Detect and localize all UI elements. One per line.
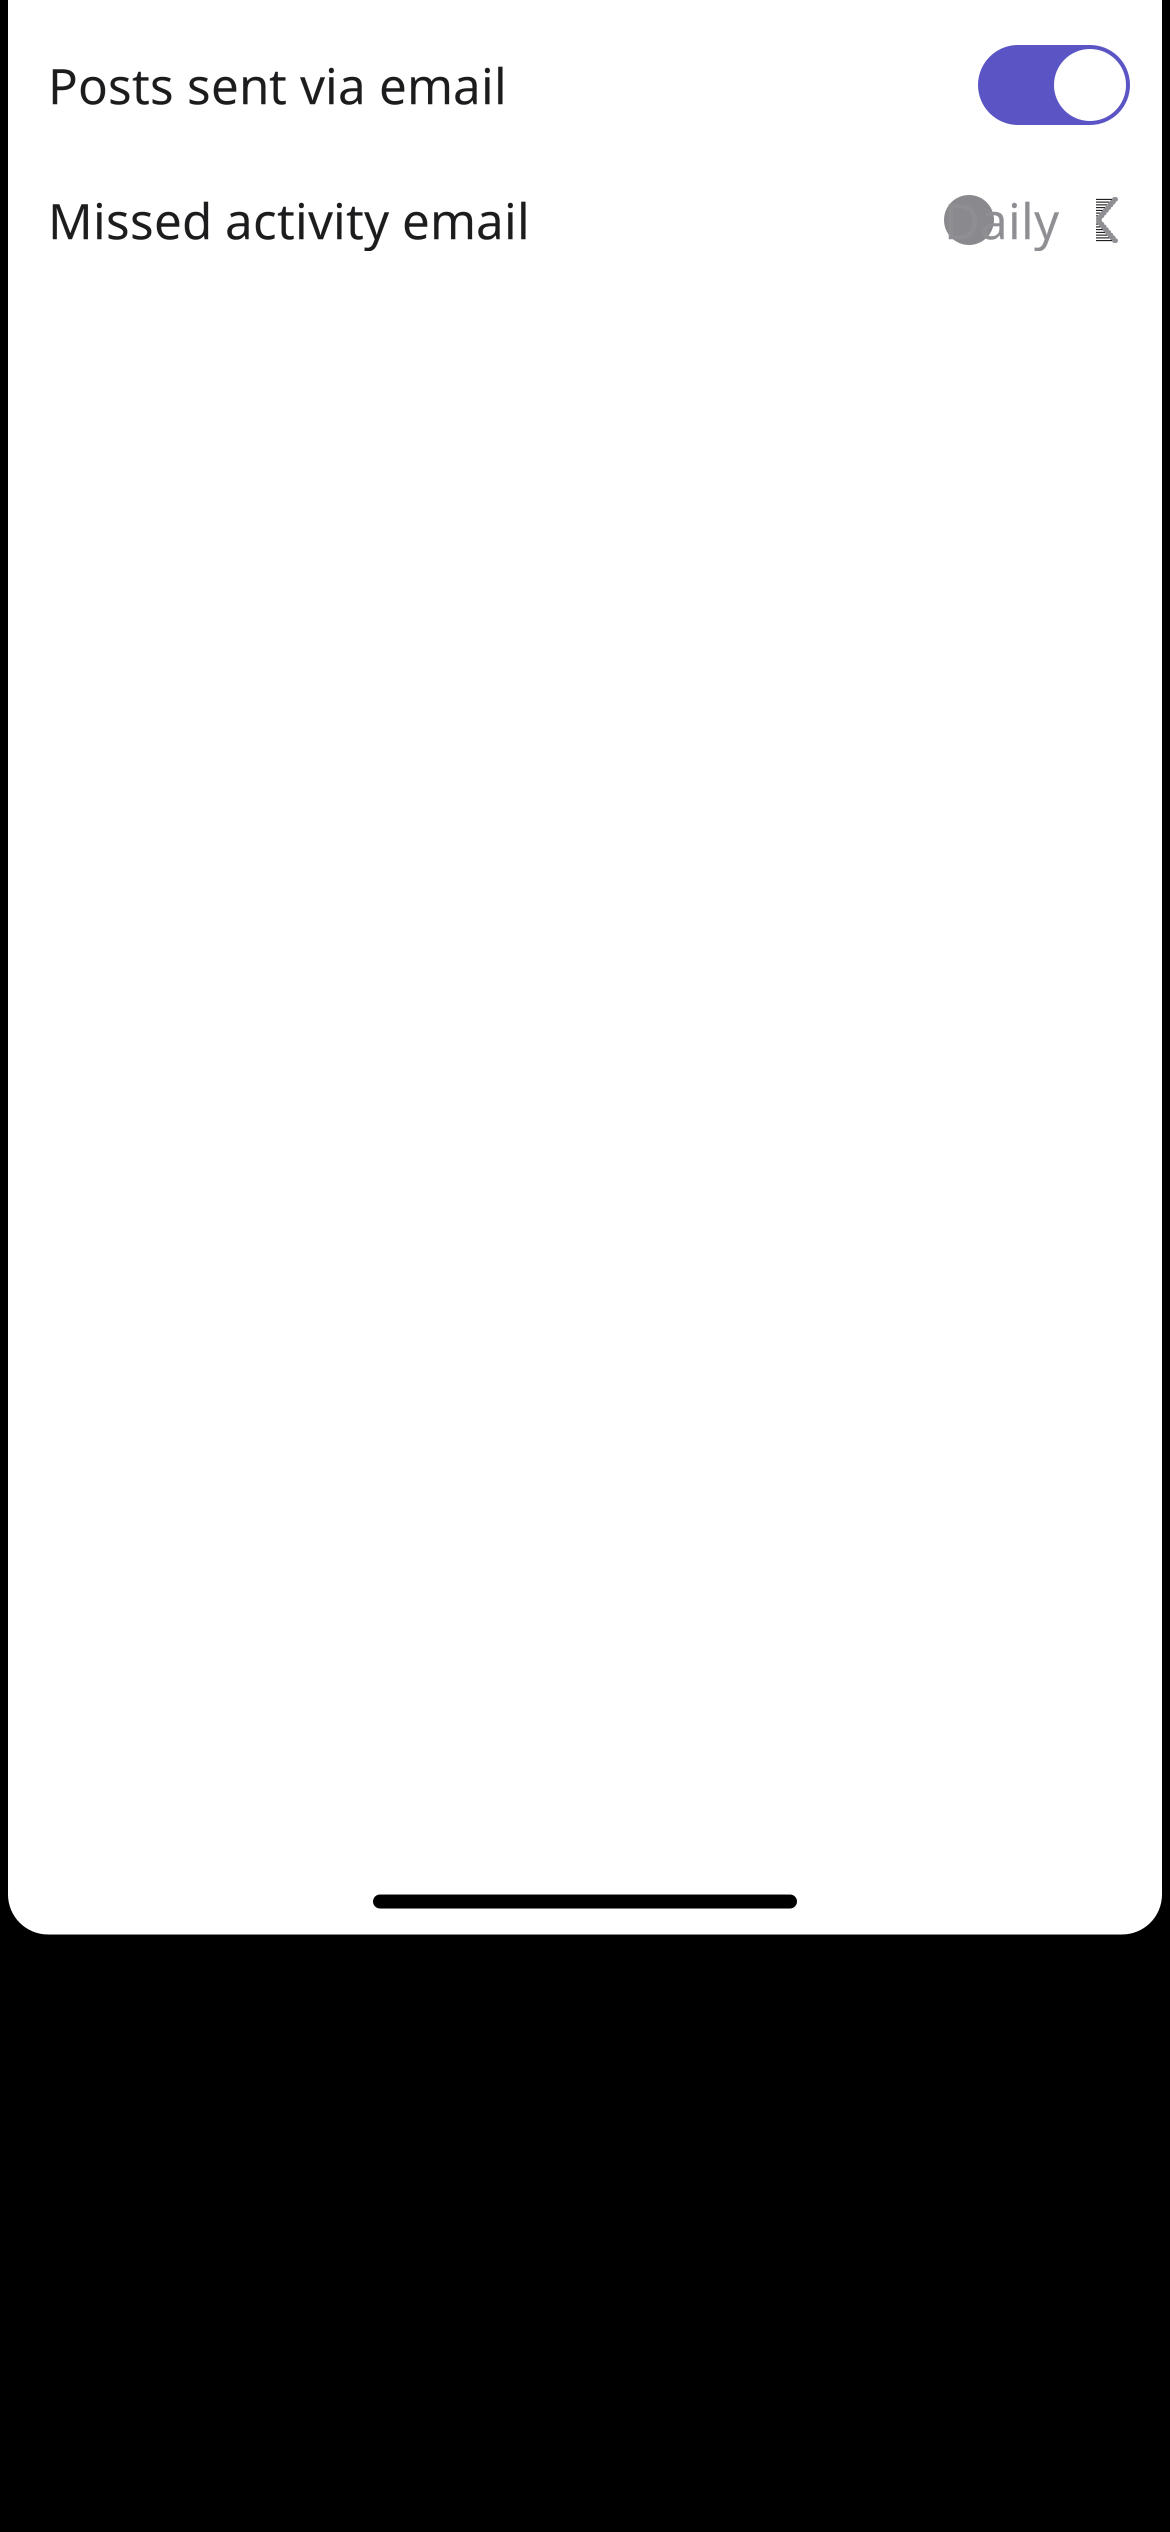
staticText: Posts sent via email bbox=[48, 52, 507, 118]
button[interactable]: Missed activity email bbox=[8, 152, 1162, 287]
staticText: Daily bbox=[944, 187, 1059, 253]
button[interactable]: Posts sent via email bbox=[8, 17, 1162, 152]
staticText: Missed activity email bbox=[48, 187, 530, 253]
